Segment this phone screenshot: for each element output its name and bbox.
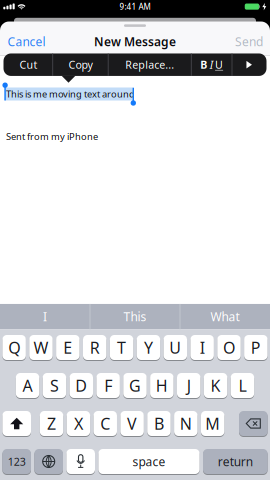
button[interactable]: Cut	[4, 53, 52, 76]
button[interactable]: R	[83, 334, 106, 360]
button[interactable]: O	[217, 334, 241, 360]
staticText: Q	[8, 337, 20, 358]
button[interactable]: Delete	[239, 410, 268, 436]
button[interactable]: E	[56, 334, 80, 360]
button[interactable]: N	[174, 410, 198, 436]
staticText: Copy	[68, 58, 92, 72]
staticText: X	[74, 413, 83, 434]
staticText: Z	[47, 413, 56, 434]
staticText: A	[23, 375, 33, 396]
staticText: Send	[235, 33, 263, 49]
button[interactable]: space	[98, 448, 200, 474]
button[interactable]: B	[192, 53, 231, 76]
button[interactable]: V	[120, 410, 144, 436]
button[interactable]: Replace...	[110, 53, 190, 76]
button[interactable]: Cancel	[7, 33, 45, 49]
staticText: I	[200, 337, 205, 358]
staticText: Sent from my iPhone	[6, 130, 98, 143]
staticText: J	[187, 375, 191, 396]
button[interactable]: K	[204, 372, 227, 398]
staticText: L	[238, 375, 246, 396]
button[interactable]: S	[43, 372, 66, 398]
staticText: return	[218, 453, 253, 469]
staticText: New Message	[94, 33, 176, 49]
button[interactable]: Y	[137, 334, 160, 360]
staticText: G	[129, 375, 141, 396]
staticText: N	[180, 413, 192, 434]
staticText: B	[200, 58, 207, 72]
staticText: This is me moving text around	[6, 88, 135, 100]
button[interactable]: W	[29, 334, 53, 360]
staticText: S	[50, 375, 59, 396]
button[interactable]: T	[110, 334, 133, 360]
button[interactable]: P	[244, 334, 268, 360]
button[interactable]: D	[69, 372, 93, 398]
button[interactable]: Shift	[2, 410, 31, 436]
staticText: 9:41 AM	[119, 1, 150, 12]
button[interactable]: Send	[235, 33, 263, 49]
button[interactable]: G	[123, 372, 147, 398]
staticText: F	[104, 375, 112, 396]
staticText: M	[205, 413, 220, 434]
staticText: E	[63, 337, 72, 358]
staticText: D	[75, 375, 87, 396]
staticText: Y	[144, 337, 153, 358]
staticText: I	[43, 309, 47, 325]
staticText: Cancel	[7, 33, 45, 49]
button[interactable]: B	[147, 410, 171, 436]
button[interactable]: This	[91, 304, 179, 329]
staticText: Cut	[19, 58, 37, 72]
button[interactable]: A	[16, 372, 39, 398]
staticText: U	[215, 58, 223, 72]
button[interactable]: C	[93, 410, 117, 436]
staticText: B	[154, 413, 164, 434]
staticText: V	[127, 413, 137, 434]
button[interactable]: Z	[40, 410, 63, 436]
staticText: Replace...	[125, 58, 174, 72]
button[interactable]: X	[67, 410, 90, 436]
staticText: I	[210, 58, 213, 72]
button[interactable]: Copy	[53, 53, 107, 76]
staticText: U	[169, 337, 181, 358]
button[interactable]: 123	[2, 448, 31, 474]
button[interactable]: M	[201, 410, 224, 436]
button[interactable]: return	[203, 448, 268, 474]
staticText: R	[90, 337, 100, 358]
button[interactable]: F	[96, 372, 120, 398]
button[interactable]: Q	[2, 334, 26, 360]
button[interactable]: H	[150, 372, 174, 398]
staticText: O	[223, 337, 235, 358]
staticText: This	[123, 309, 146, 325]
button[interactable]: Next keyboard	[34, 448, 63, 474]
staticText: H	[156, 375, 168, 396]
staticText: 123	[8, 454, 26, 469]
button[interactable]: I	[190, 334, 214, 360]
button[interactable]: U	[164, 334, 187, 360]
staticText: C	[100, 413, 110, 434]
staticText: space	[132, 453, 165, 469]
button[interactable]: More actions	[233, 53, 266, 76]
button[interactable]: Dictation	[66, 448, 95, 474]
staticText: W	[33, 337, 48, 358]
button[interactable]: J	[177, 372, 200, 398]
button[interactable]: What	[181, 304, 269, 329]
staticText: What	[210, 309, 239, 325]
staticText: T	[117, 337, 126, 358]
staticText: K	[211, 375, 221, 396]
button[interactable]: L	[231, 372, 254, 398]
staticText: P	[251, 337, 261, 358]
button[interactable]: I	[1, 304, 89, 329]
